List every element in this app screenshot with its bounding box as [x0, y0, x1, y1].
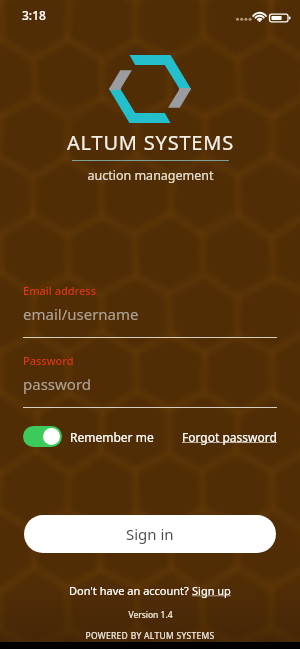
staticText: Password — [23, 353, 74, 368]
button[interactable]: Sign up — [192, 583, 231, 598]
staticText: Remember me — [70, 429, 154, 445]
staticText: ALTUM SYSTEMS — [67, 129, 234, 156]
staticText: Sign up — [192, 583, 231, 598]
staticText: auction management — [87, 167, 214, 184]
staticText: 3:18 — [22, 7, 46, 23]
button[interactable]: Forgot password — [182, 429, 277, 445]
staticText: Don't have an account? — [69, 583, 192, 598]
staticText: Forgot password — [182, 429, 277, 445]
staticText: Sign in — [126, 524, 174, 544]
button[interactable]: Sign in — [24, 515, 276, 553]
staticText: POWERED BY ALTUM SYSTEMS — [85, 630, 215, 642]
button[interactable]: Remember me — [23, 426, 154, 447]
staticText: email/username — [23, 304, 139, 324]
staticText: password — [23, 374, 91, 394]
staticText: Version 1.4 — [128, 609, 173, 621]
staticText: Email address — [23, 283, 97, 298]
